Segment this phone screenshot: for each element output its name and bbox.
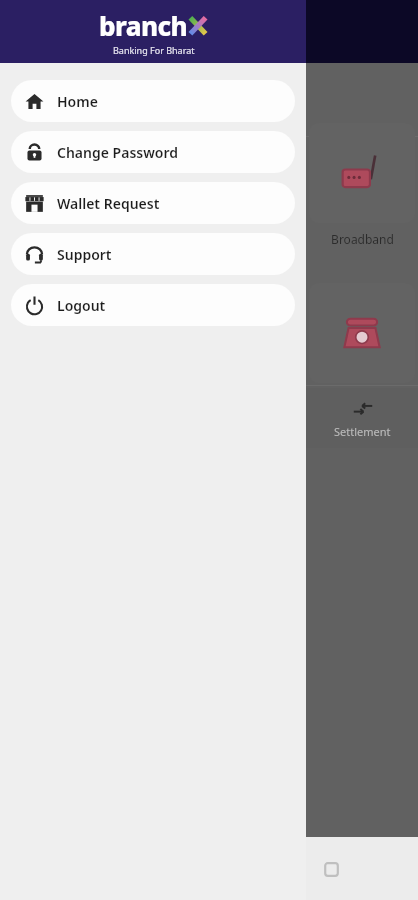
button[interactable]: Change Password bbox=[11, 131, 295, 173]
button[interactable]: Home bbox=[11, 80, 295, 122]
staticText: Banking For Bharat bbox=[113, 44, 195, 56]
staticText: Logout bbox=[57, 296, 106, 315]
staticText: Broadband bbox=[331, 231, 394, 247]
staticText: Support bbox=[57, 245, 112, 264]
button[interactable] bbox=[309, 123, 415, 223]
button[interactable]: Wallet Request bbox=[11, 182, 295, 224]
button[interactable]: Settlement bbox=[306, 388, 418, 448]
button[interactable] bbox=[309, 283, 415, 383]
button[interactable]: Logout bbox=[11, 284, 295, 326]
button[interactable]: Support bbox=[11, 233, 295, 275]
staticText: Home bbox=[57, 92, 98, 111]
staticText: Settlement bbox=[334, 424, 391, 439]
staticText: Landline bbox=[338, 391, 387, 407]
button[interactable]: Recent apps bbox=[314, 852, 348, 886]
staticText: Change Password bbox=[57, 143, 179, 162]
staticText: Wallet Request bbox=[57, 194, 160, 213]
staticText: branch bbox=[99, 8, 188, 43]
